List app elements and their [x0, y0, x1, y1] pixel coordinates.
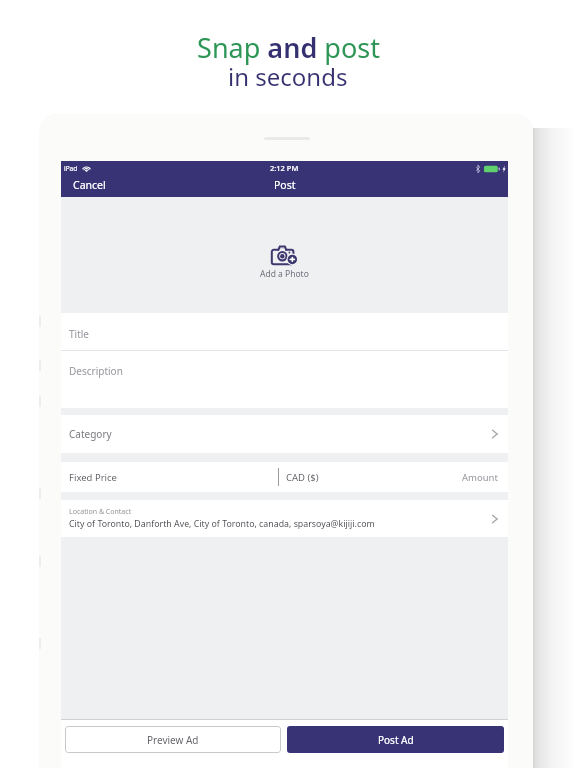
staticText: Preview Ad [147, 733, 199, 747]
other: Open [492, 514, 498, 524]
staticText: Add a Photo [260, 268, 309, 280]
button[interactable]: Post Ad [287, 726, 504, 753]
staticText: Post [274, 178, 296, 192]
staticText: Fixed Price [69, 471, 117, 484]
button[interactable]: Title [61, 313, 508, 350]
staticText: CAD ($) [286, 471, 319, 484]
staticText: Title [69, 327, 89, 341]
button[interactable]: Cancel [69, 175, 110, 195]
button[interactable]: Preview Ad [65, 726, 281, 753]
staticText: Category [69, 427, 112, 441]
staticText: City of Toronto, Danforth Ave, City of T… [69, 518, 375, 530]
button[interactable]: Fixed Price [61, 462, 508, 492]
button[interactable]: Description [61, 351, 508, 408]
staticText: 2:12 PM [270, 163, 299, 173]
other: Open [492, 429, 498, 439]
staticText: Snap and post [197, 29, 380, 66]
staticText: Description [69, 364, 123, 378]
staticText: in seconds [228, 60, 348, 93]
staticText: Post Ad [378, 733, 414, 747]
button[interactable]: Category [61, 415, 508, 453]
staticText: Location & Contact [69, 507, 132, 517]
button[interactable]: Add a Photo [61, 197, 508, 313]
staticText: iPad [64, 164, 78, 173]
staticText: Amount [462, 471, 498, 484]
button[interactable]: Location & Contact [61, 500, 508, 537]
staticText: Cancel [73, 178, 106, 192]
